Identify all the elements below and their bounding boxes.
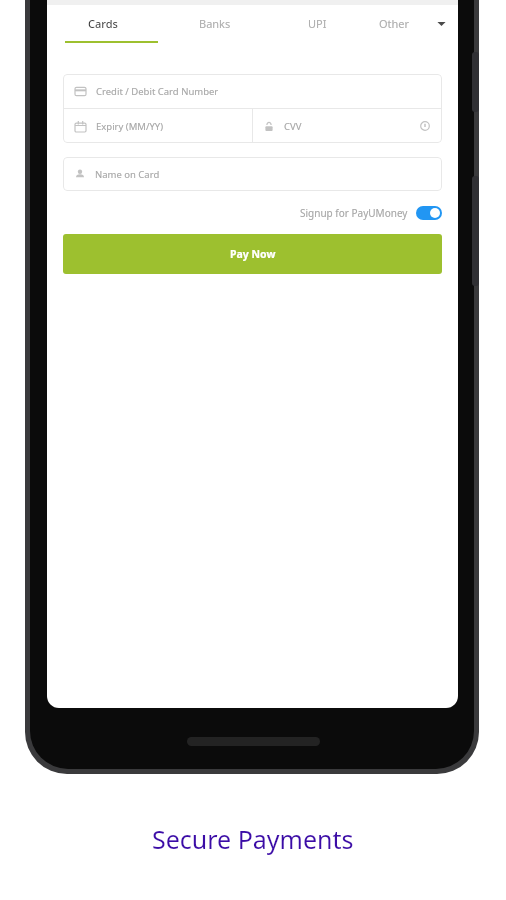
staticText: Expiry (MM/YY) bbox=[96, 120, 164, 133]
staticText: Banks bbox=[199, 16, 231, 31]
staticText: Other bbox=[379, 16, 410, 31]
button[interactable]: Other bbox=[363, 5, 425, 41]
staticText: Cards bbox=[88, 16, 118, 31]
button[interactable]: Pay Now bbox=[63, 234, 442, 274]
button[interactable]: Signup for PayUMoney bbox=[300, 206, 442, 220]
staticText: UPI bbox=[308, 16, 327, 31]
button[interactable]: What is CVV bbox=[416, 117, 434, 135]
staticText: Signup for PayUMoney bbox=[300, 206, 408, 220]
button[interactable]: Expiry (MM/YY) bbox=[63, 109, 252, 143]
staticText: Secure Payments bbox=[152, 822, 354, 856]
staticText: Name on Card bbox=[95, 168, 160, 181]
staticText: Credit / Debit Card Number bbox=[96, 85, 219, 98]
button[interactable]: UPI bbox=[271, 5, 363, 41]
button[interactable]: Banks bbox=[159, 5, 271, 41]
staticText: Pay Now bbox=[230, 247, 276, 261]
button[interactable]: More options bbox=[425, 5, 458, 41]
staticText: CVV bbox=[284, 120, 302, 133]
button[interactable]: Name on Card bbox=[63, 157, 442, 191]
button[interactable]: Cards bbox=[47, 5, 159, 41]
button[interactable]: Credit / Debit Card Number bbox=[63, 74, 442, 108]
button[interactable]: CVV bbox=[253, 109, 442, 143]
